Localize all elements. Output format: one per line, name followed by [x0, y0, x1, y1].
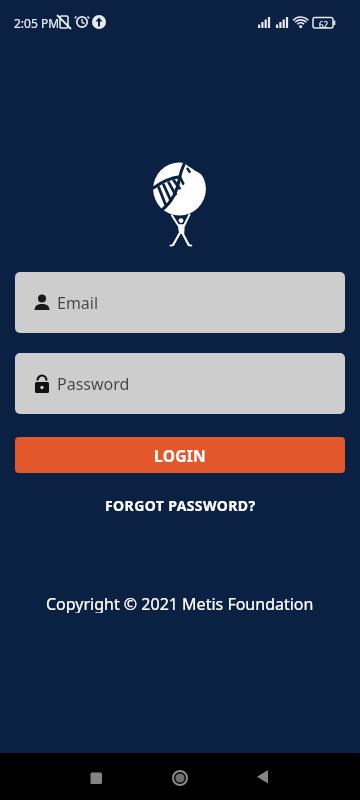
- staticText: Password: [57, 373, 130, 395]
- staticText: 62: [319, 19, 329, 30]
- button[interactable]: [236, 753, 288, 800]
- button[interactable]: Email: [15, 272, 345, 333]
- button[interactable]: [154, 753, 206, 800]
- staticText: Copyright © 2021 Metis Foundation: [46, 593, 314, 613]
- button[interactable]: Password: [15, 353, 345, 414]
- button[interactable]: FORGOT PASSWORD?: [0, 494, 360, 516]
- staticText: 2:05 PM: [14, 15, 60, 31]
- staticText: FORGOT PASSWORD?: [105, 496, 256, 515]
- staticText: LOGIN: [154, 445, 206, 466]
- button[interactable]: LOGIN: [15, 437, 345, 473]
- staticText: Email: [57, 292, 99, 314]
- button[interactable]: [72, 753, 124, 800]
